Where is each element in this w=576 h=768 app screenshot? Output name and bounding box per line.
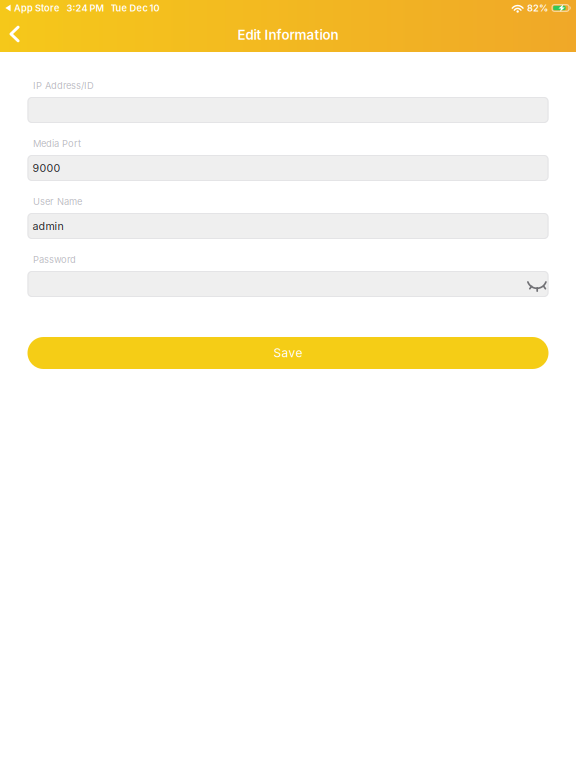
button[interactable]: Save [27, 337, 548, 369]
staticText: Media Port [33, 138, 81, 149]
staticText: Tue Dec 10 [110, 2, 159, 14]
staticText: admin [32, 219, 63, 232]
button[interactable]: admin [27, 213, 548, 239]
staticText: App Store [14, 2, 60, 14]
button[interactable]: Back [0, 16, 29, 52]
staticText: Password [33, 254, 76, 265]
staticText: User Name [33, 196, 82, 207]
button[interactable] [27, 271, 548, 297]
staticText: Edit Information [237, 27, 338, 43]
staticText: IP Address/ID [33, 80, 94, 91]
staticText: 82% [527, 2, 548, 14]
staticText: 3:24 PM [66, 2, 104, 14]
button[interactable]: 9000 [27, 155, 548, 181]
staticText: Save [273, 346, 302, 360]
staticText: 9000 [32, 161, 60, 174]
